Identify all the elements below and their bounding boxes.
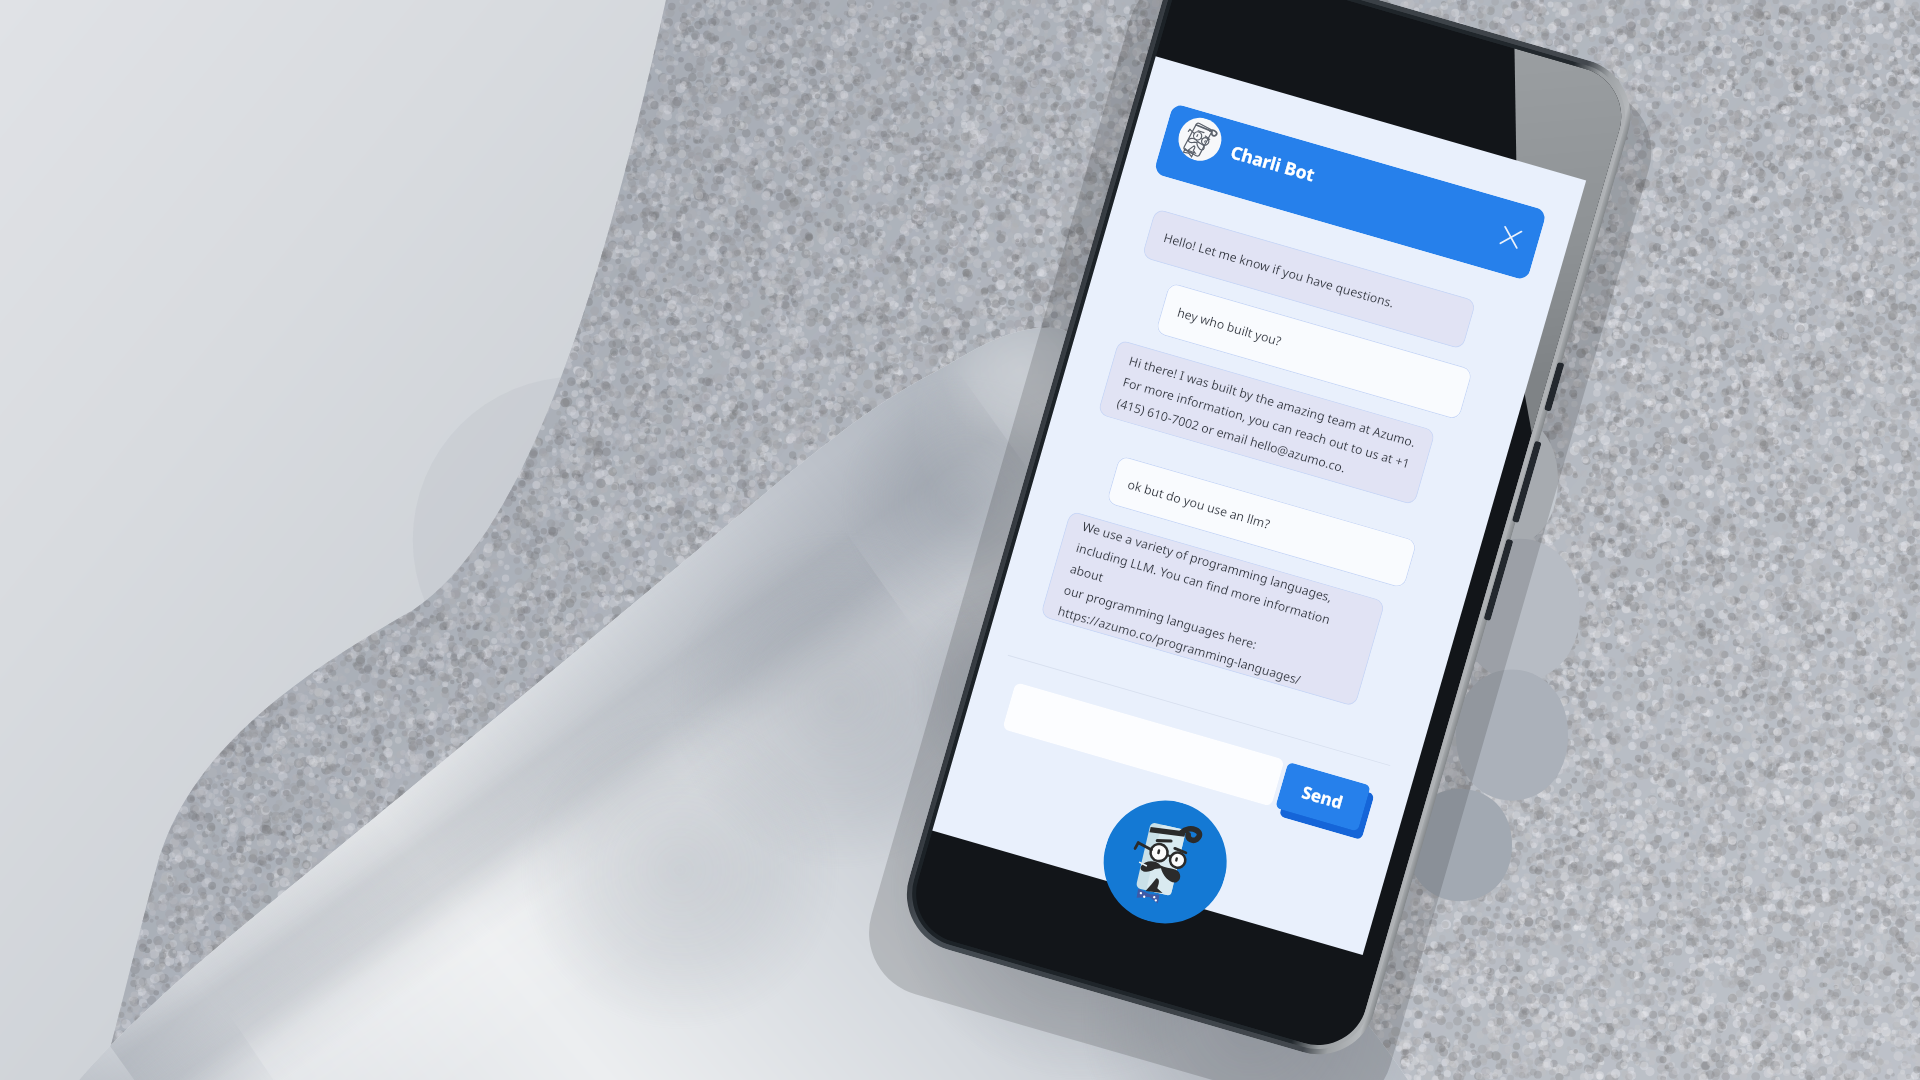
- staticText: Hi there! I was built by the amazing tea…: [1115, 352, 1418, 493]
- staticText: ok but do you use an llm?: [1126, 476, 1273, 533]
- button[interactable]: Close: [1487, 213, 1534, 260]
- staticText: We use a variety of programming language…: [1056, 518, 1369, 701]
- button[interactable]: Hi there! I was built by the amazing tea…: [1097, 339, 1436, 506]
- staticText: Charli Bot: [1228, 139, 1318, 187]
- staticText: Send: [1299, 780, 1346, 814]
- staticText: Hello! Let me know if you have questions…: [1162, 229, 1397, 312]
- button[interactable]: We use a variety of programming language…: [1040, 510, 1385, 707]
- button[interactable]: hey who built you?: [1155, 282, 1473, 421]
- button[interactable]: ok but do you use an llm?: [1106, 455, 1418, 589]
- button[interactable]: Charli Bot: [1153, 103, 1547, 281]
- button[interactable]: Charli Bot avatar: [1089, 786, 1241, 938]
- button[interactable]: Send: [1275, 762, 1371, 832]
- button[interactable]: Hello! Let me know if you have questions…: [1141, 208, 1476, 350]
- button[interactable]: [1002, 682, 1285, 807]
- staticText: hey who built you?: [1175, 304, 1284, 350]
